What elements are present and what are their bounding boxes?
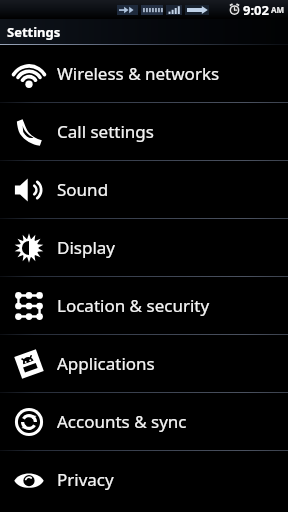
staticText: Applications [57, 352, 155, 375]
button[interactable]: Call settings [0, 103, 288, 160]
button[interactable]: Display [0, 219, 288, 276]
staticText: Settings [7, 23, 61, 41]
staticText: Accounts & sync [57, 410, 187, 433]
staticText: Location & security [57, 294, 210, 317]
button[interactable]: Accounts & sync [0, 393, 288, 450]
button[interactable]: Wireless & networks [0, 45, 288, 102]
staticText: Wireless & networks [57, 62, 220, 85]
button[interactable]: Privacy [0, 451, 288, 508]
staticText: Display [57, 236, 115, 259]
staticText: AM [271, 4, 285, 15]
staticText: 9:02 [243, 1, 269, 19]
button[interactable]: Applications [0, 335, 288, 392]
button[interactable]: Location & security [0, 277, 288, 334]
staticText: Sound [57, 178, 109, 201]
button[interactable]: Sound [0, 161, 288, 218]
staticText: Call settings [57, 120, 154, 143]
staticText: Privacy [57, 468, 114, 491]
